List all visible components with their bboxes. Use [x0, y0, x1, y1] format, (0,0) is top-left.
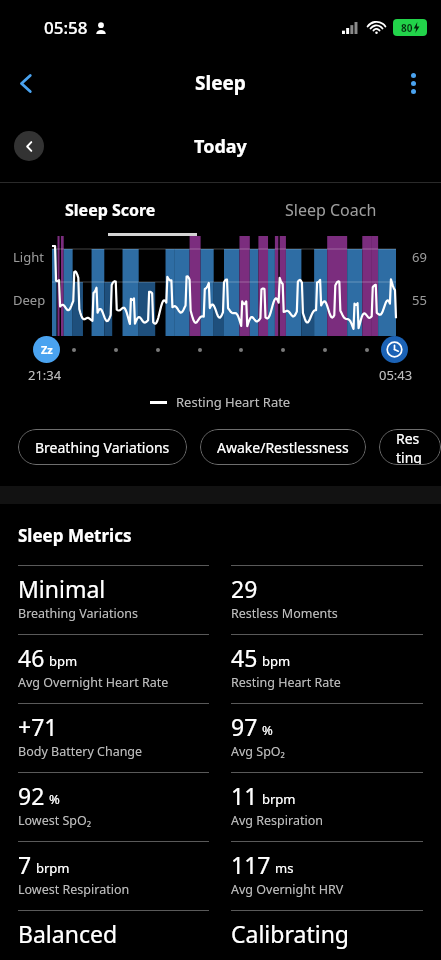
- staticText: brpm: [36, 859, 70, 877]
- button[interactable]: Breathing Variations: [18, 429, 187, 465]
- button[interactable]: 45: [231, 634, 423, 703]
- button[interactable]: Resting: [379, 429, 441, 465]
- button[interactable]: +71: [18, 703, 209, 772]
- other: Wake time: [381, 336, 408, 363]
- staticText: bpm: [262, 652, 291, 670]
- staticText: Sleep Metrics: [18, 524, 132, 547]
- staticText: 117: [231, 849, 271, 880]
- staticText: Calibrating: [231, 918, 349, 949]
- staticText: %: [49, 790, 60, 808]
- staticText: 69: [412, 248, 427, 266]
- staticText: Avg Respiration: [231, 812, 323, 829]
- staticText: Awake/Restlessness: [217, 438, 349, 457]
- staticText: 21:34: [28, 366, 62, 384]
- staticText: 46: [18, 642, 45, 673]
- staticText: Breathing Variations: [18, 605, 138, 622]
- button[interactable]: 11: [231, 772, 423, 841]
- staticText: 97: [231, 711, 258, 742]
- staticText: Lowest SpO₂: [18, 812, 92, 829]
- button[interactable]: Sleep Score: [0, 183, 220, 236]
- staticText: Balanced: [18, 918, 118, 949]
- staticText: Avg SpO₂: [231, 743, 285, 760]
- button[interactable]: 46: [18, 634, 209, 703]
- staticText: Zz: [41, 342, 53, 357]
- staticText: +71: [18, 711, 58, 742]
- button[interactable]: Balanced: [18, 910, 209, 949]
- staticText: Restless Moments: [231, 605, 338, 622]
- button[interactable]: 117: [231, 841, 423, 910]
- button[interactable]: 92: [18, 772, 209, 841]
- button[interactable]: Previous day: [14, 131, 44, 161]
- staticText: Avg Overnight Heart Rate: [18, 674, 169, 691]
- staticText: 80: [401, 21, 413, 35]
- staticText: 45: [231, 642, 258, 673]
- staticText: 29: [231, 573, 258, 604]
- staticText: Body Battery Change: [18, 743, 143, 760]
- staticText: Deep: [13, 291, 46, 309]
- staticText: 7: [18, 849, 32, 880]
- other: Sleep start: [33, 336, 60, 363]
- staticText: Sleep Score: [65, 199, 156, 221]
- button[interactable]: 97: [231, 703, 423, 772]
- staticText: Lowest Respiration: [18, 881, 130, 898]
- staticText: Breathing Variations: [35, 438, 170, 457]
- staticText: Sleep Coach: [285, 199, 377, 221]
- staticText: 55: [412, 291, 427, 309]
- staticText: 05:43: [379, 366, 413, 384]
- button[interactable]: Minimal: [18, 565, 209, 634]
- button[interactable]: Calibrating: [231, 910, 423, 949]
- staticText: 11: [231, 780, 258, 811]
- button[interactable]: More options: [391, 61, 435, 105]
- staticText: Resting Heart Rate: [176, 393, 291, 411]
- button[interactable]: 7: [18, 841, 209, 910]
- button[interactable]: Back: [4, 61, 48, 105]
- button[interactable]: Awake/Restlessness: [200, 429, 366, 465]
- staticText: Light: [13, 248, 44, 266]
- staticText: Resting Heart Rate: [231, 674, 341, 691]
- staticText: Sleep: [195, 70, 246, 96]
- staticText: brpm: [262, 790, 296, 808]
- staticText: Today: [194, 134, 247, 159]
- staticText: 05:58: [44, 16, 88, 39]
- button[interactable]: 29: [231, 565, 423, 634]
- staticText: ms: [275, 859, 294, 877]
- staticText: bpm: [49, 652, 78, 670]
- staticText: Minimal: [18, 573, 106, 604]
- staticText: %: [262, 721, 273, 739]
- button[interactable]: Sleep Coach: [220, 183, 441, 236]
- staticText: 92: [18, 780, 45, 811]
- staticText: Resting: [396, 429, 424, 465]
- staticText: Avg Overnight HRV: [231, 881, 344, 898]
